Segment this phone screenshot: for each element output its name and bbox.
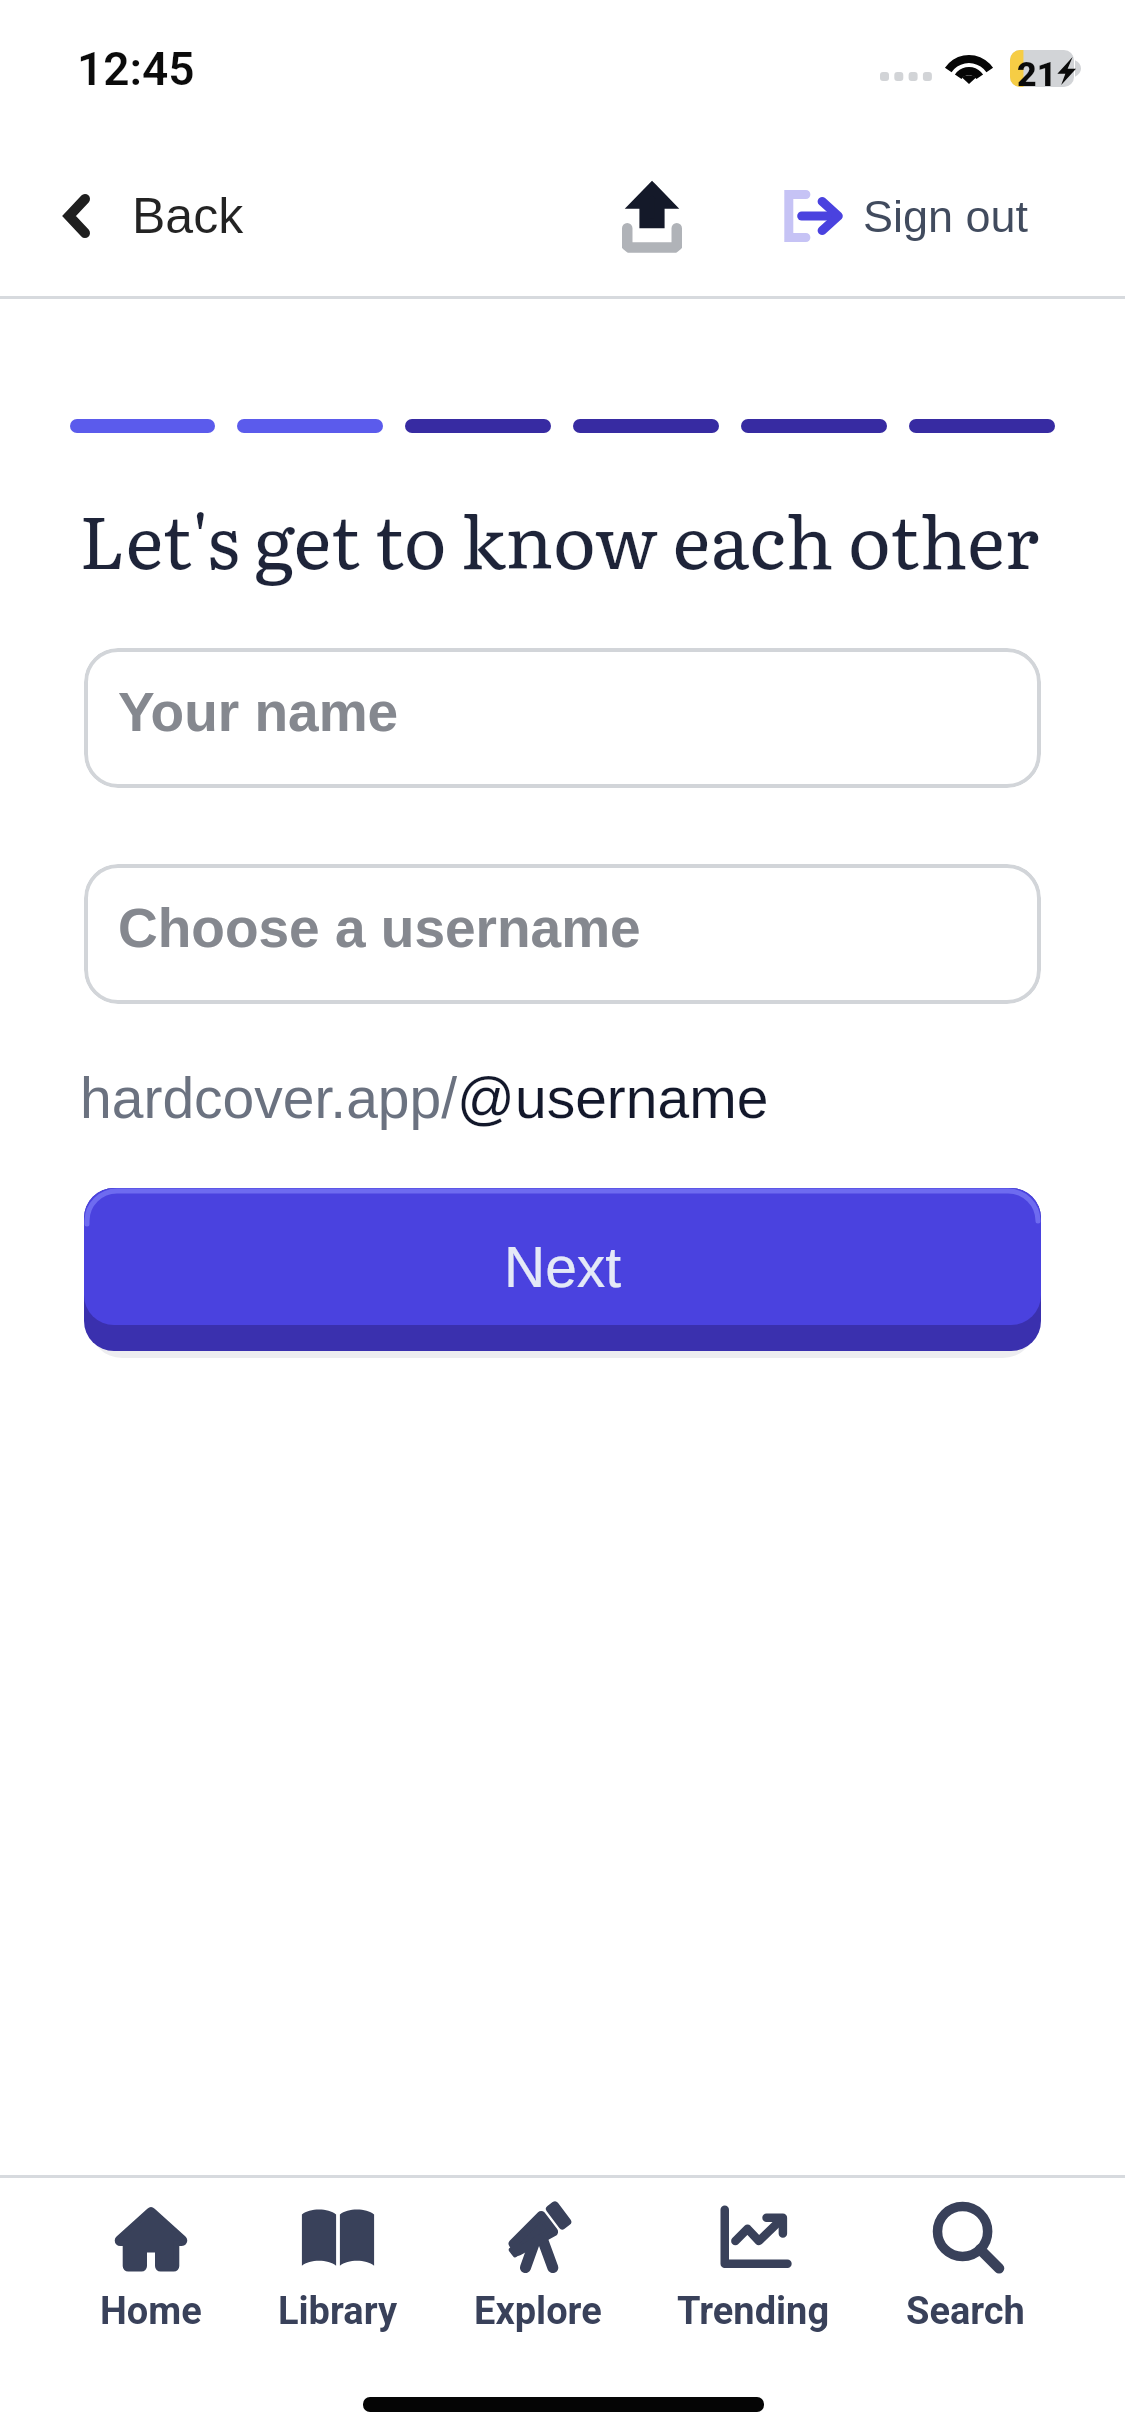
button[interactable]: Upload (611, 171, 693, 261)
staticText: 12:45 (77, 42, 195, 96)
staticText: Choose a username (118, 897, 641, 958)
button[interactable]: Your name (84, 648, 1041, 788)
button[interactable]: Back (40, 174, 268, 258)
staticText: Search (906, 2289, 1025, 2334)
staticText: Your name (118, 681, 399, 742)
staticText: Next (504, 1235, 622, 1299)
button[interactable]: Sign out (769, 178, 1041, 254)
button[interactable]: Home (100, 2191, 202, 2334)
staticText: 21 (1017, 54, 1057, 94)
staticText: Sign out (863, 191, 1029, 241)
staticText: Trending (677, 2289, 830, 2334)
staticText: hardcover.app/@username (80, 1066, 769, 1130)
button[interactable]: Choose a username (84, 864, 1041, 1004)
staticText: Library (278, 2289, 398, 2334)
button[interactable]: Library (278, 2191, 398, 2334)
staticText: Explore (474, 2289, 602, 2334)
button[interactable]: Trending (677, 2191, 830, 2334)
staticText: Let's get to know each other (79, 483, 1039, 591)
button[interactable]: Search (906, 2191, 1025, 2334)
button[interactable]: Explore (474, 2191, 602, 2334)
button[interactable]: Next (84, 1188, 1041, 1325)
staticText: Home (100, 2289, 202, 2334)
staticText: Back (132, 188, 244, 244)
